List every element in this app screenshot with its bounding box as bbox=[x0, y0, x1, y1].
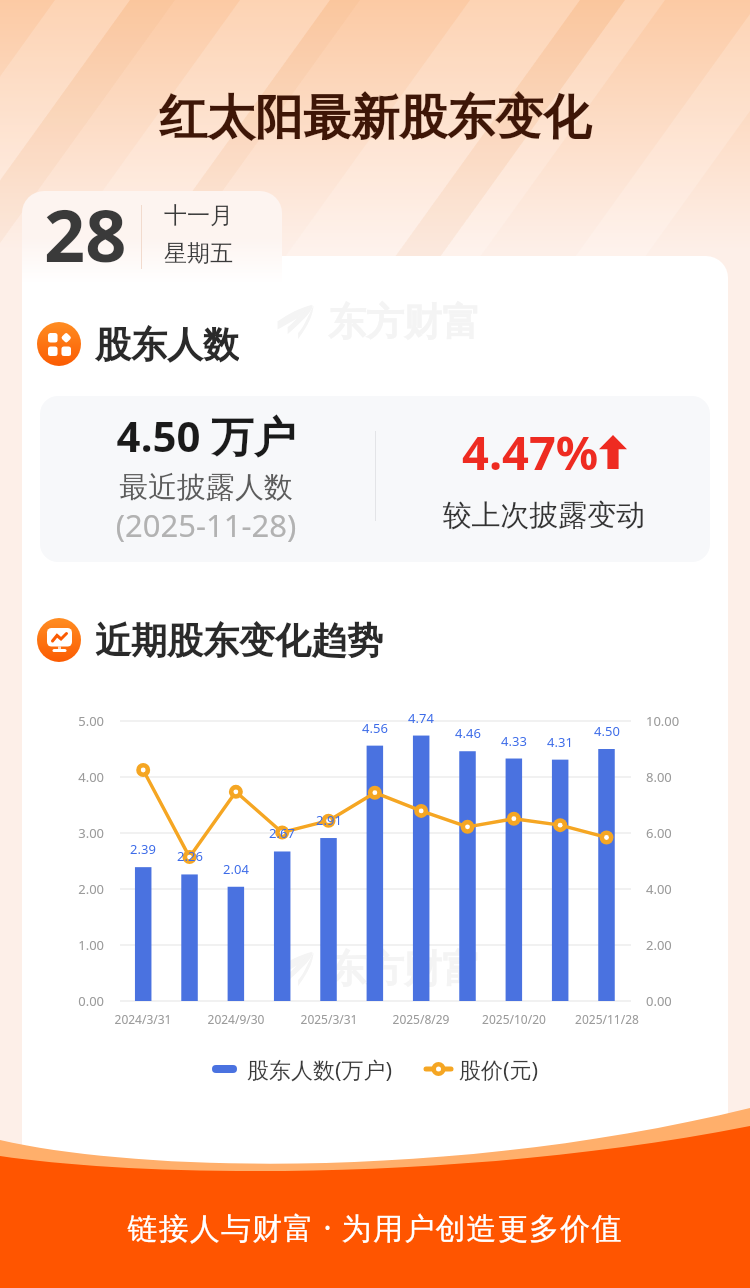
staticText: 4.47% bbox=[462, 420, 599, 484]
staticText: 28 bbox=[44, 191, 127, 278]
staticText: 2025/8/29 bbox=[371, 1011, 471, 1027]
staticText: 0.00 bbox=[646, 992, 716, 1010]
staticText: 4.74 bbox=[391, 709, 451, 727]
staticText: 4.31 bbox=[530, 733, 590, 751]
staticText: 东方财富 bbox=[328, 298, 480, 346]
staticText: 最近披露人数 bbox=[40, 469, 372, 506]
staticText: 2.91 bbox=[299, 811, 359, 829]
staticText: 2.26 bbox=[160, 847, 220, 865]
staticText: 4.00 bbox=[646, 880, 716, 898]
staticText: 2025/11/28 bbox=[557, 1011, 657, 1027]
staticText: 2.00 bbox=[646, 936, 716, 954]
staticText: (2025-11-28) bbox=[40, 504, 372, 546]
staticText: 2025/10/20 bbox=[464, 1011, 564, 1027]
staticText: 4.33 bbox=[484, 732, 544, 750]
staticText: 4.50 万户 bbox=[40, 407, 372, 464]
button[interactable]: 股东人数 bbox=[37, 322, 267, 366]
button[interactable]: 28 bbox=[22, 191, 282, 284]
staticText: 4.46 bbox=[438, 724, 498, 742]
staticText: 1.00 bbox=[44, 936, 104, 954]
staticText: 星期五 bbox=[164, 239, 233, 268]
staticText: 近期股东变化趋势 bbox=[95, 618, 383, 662]
staticText: 2024/3/31 bbox=[93, 1011, 193, 1027]
staticText: 2.00 bbox=[44, 880, 104, 898]
other: 近期股东变化趋势 bbox=[37, 618, 81, 662]
staticText: 股东人数(万户) bbox=[247, 1054, 393, 1084]
staticText: 股东人数 bbox=[95, 322, 239, 366]
other: 股东人数 bbox=[37, 322, 81, 366]
staticText: 10.00 bbox=[646, 712, 716, 730]
staticText: 股价(元) bbox=[459, 1054, 539, 1084]
staticText: 4.56 bbox=[345, 719, 405, 737]
staticText: 红太阳最新股东变化 bbox=[0, 88, 750, 148]
staticText: 2024/9/30 bbox=[186, 1011, 286, 1027]
staticText: 3.00 bbox=[44, 824, 104, 842]
staticText: 4.50 bbox=[577, 722, 637, 740]
staticText: 4.00 bbox=[44, 768, 104, 786]
button[interactable]: 4.50 万户 bbox=[40, 396, 710, 562]
staticText: 链接人与财富 · 为用户创造更多价值 bbox=[0, 1207, 750, 1248]
staticText: 6.00 bbox=[646, 824, 716, 842]
staticText: 5.00 bbox=[44, 712, 104, 730]
staticText: 2025/3/31 bbox=[279, 1011, 379, 1027]
staticText: 8.00 bbox=[646, 768, 716, 786]
staticText: 东方财富 bbox=[328, 945, 480, 993]
staticText: 2.39 bbox=[113, 840, 173, 858]
staticText: 十一月 bbox=[164, 201, 233, 230]
button[interactable]: 近期股东变化趋势 bbox=[37, 618, 417, 662]
staticText: 较上次披露变动 bbox=[376, 497, 710, 534]
staticText: 0.00 bbox=[44, 992, 104, 1010]
staticText: 2.04 bbox=[206, 860, 266, 878]
staticText: 2.67 bbox=[252, 824, 312, 842]
